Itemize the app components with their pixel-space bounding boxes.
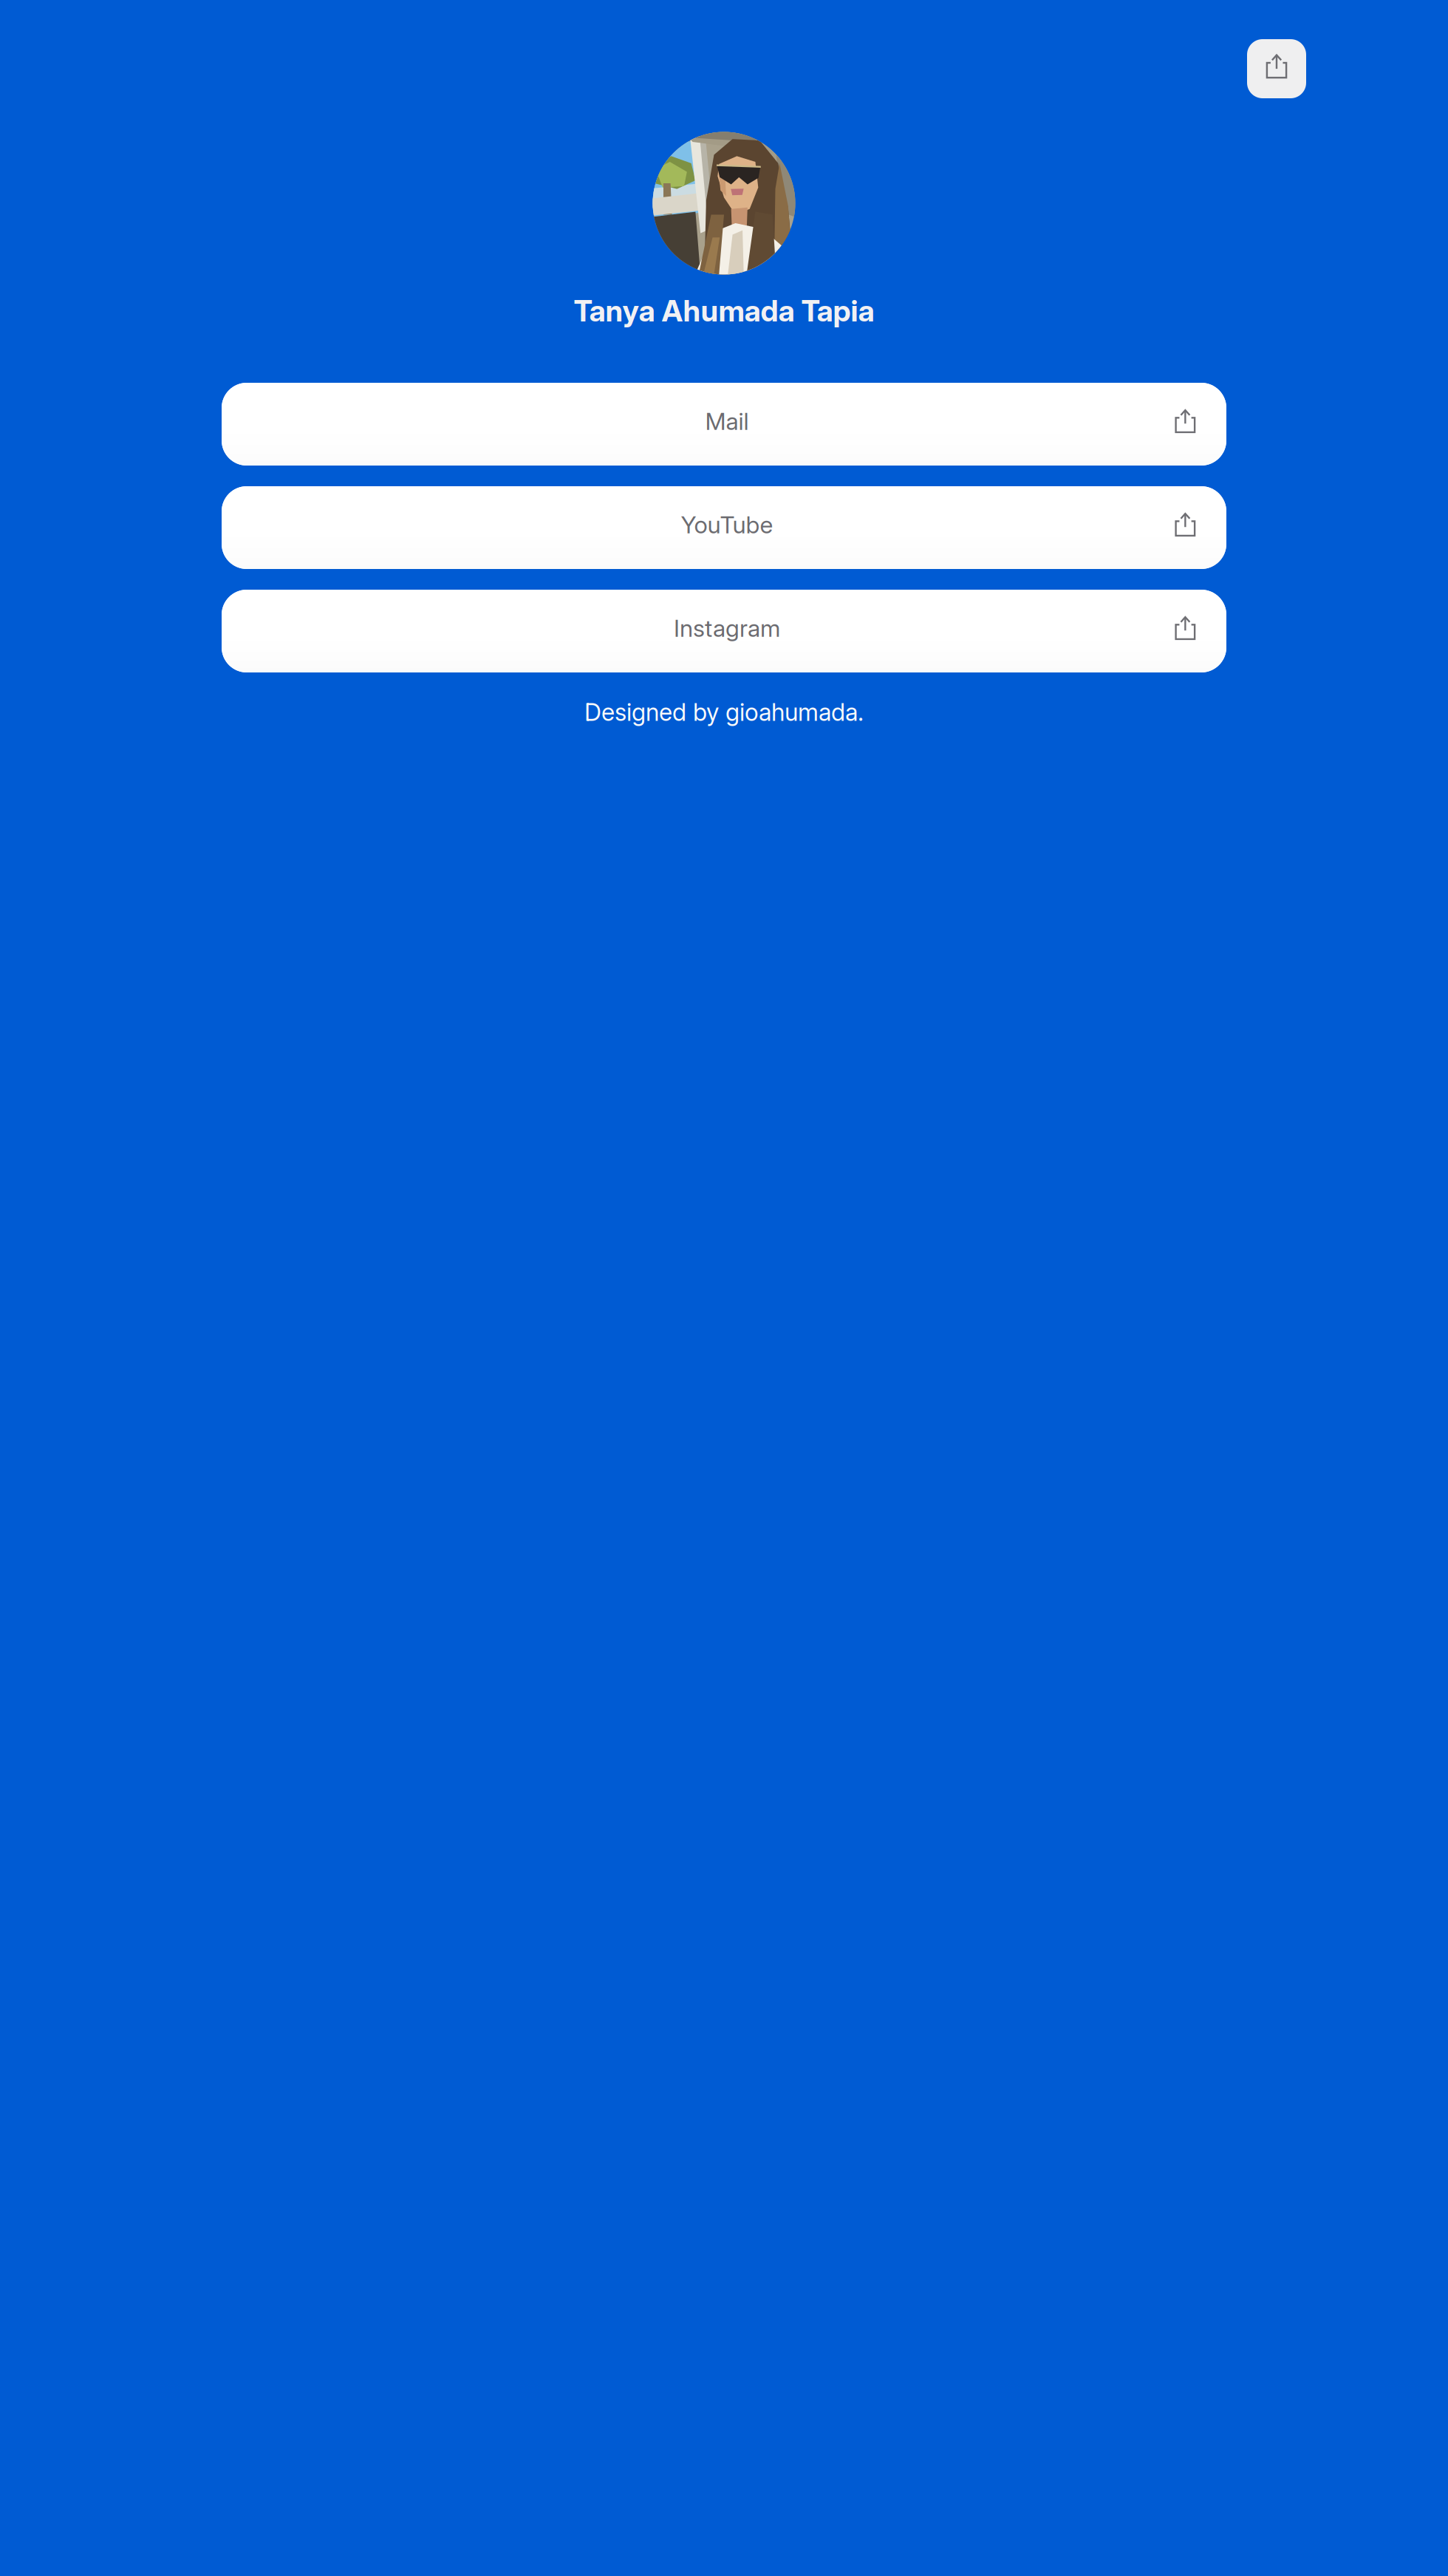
button[interactable]: Share Instagram link [1175, 619, 1196, 643]
staticText: YouTube [681, 510, 773, 539]
staticText: Designed by gioahumada. [584, 698, 864, 727]
staticText: Tanya Ahumada Tapia [574, 293, 874, 329]
staticText: Instagram [674, 614, 780, 642]
button[interactable]: Share page [1247, 39, 1306, 98]
staticText: Mail [705, 407, 749, 435]
button[interactable]: Share Mail link [1175, 412, 1196, 436]
button[interactable]: Mail [222, 383, 1226, 466]
button[interactable]: Share YouTube link [1175, 516, 1196, 540]
button[interactable]: Instagram [222, 590, 1226, 672]
button[interactable]: YouTube [222, 486, 1226, 569]
